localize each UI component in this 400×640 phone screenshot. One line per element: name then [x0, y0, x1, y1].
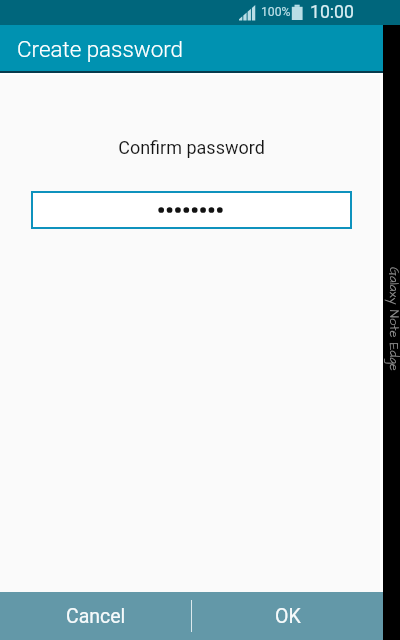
button[interactable]: Password entry field	[31, 191, 352, 229]
staticText: 100%	[261, 5, 291, 19]
staticText: OK	[275, 605, 301, 628]
staticText: 10:00	[310, 2, 354, 23]
staticText: Cancel	[66, 605, 126, 628]
staticText: Confirm password	[0, 137, 383, 158]
staticText: Create password	[17, 36, 184, 62]
button[interactable]: OK	[192, 592, 383, 640]
button[interactable]: Cancel	[0, 592, 191, 640]
staticText: Galaxy Note Edge	[379, 263, 400, 375]
